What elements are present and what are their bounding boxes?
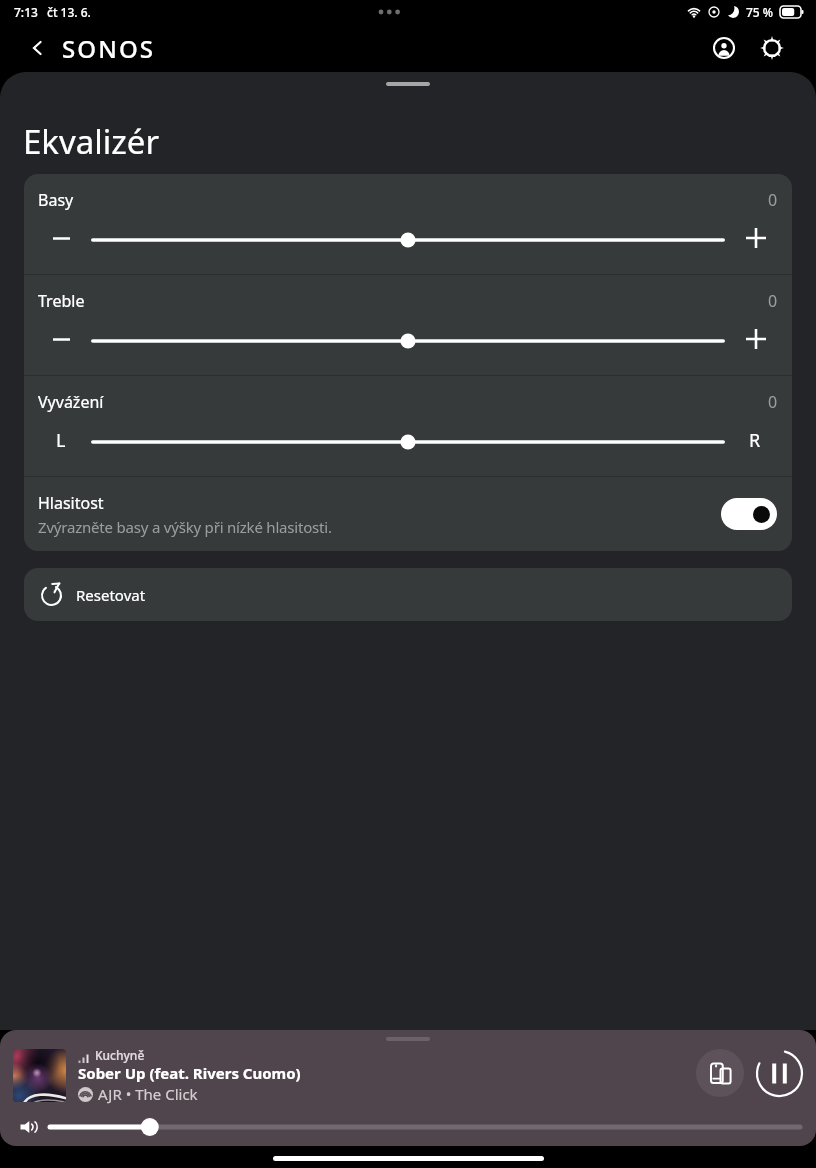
button[interactable]: Increase Treble: [725, 314, 792, 368]
button[interactable]: Pause: [752, 1046, 806, 1100]
staticText: Hlasitost: [38, 492, 104, 514]
button[interactable]: Resetovat: [24, 568, 792, 621]
button[interactable]: Select speakers: [696, 1049, 744, 1097]
staticText: Kuchyně: [95, 1047, 145, 1063]
staticText: L: [56, 428, 66, 453]
button[interactable]: Account: [702, 26, 746, 70]
staticText: AJR • The Click: [98, 1084, 198, 1104]
staticText: 75 %: [746, 4, 774, 20]
button[interactable]: Kuchyně: [0, 1042, 816, 1108]
staticText: Resetovat: [76, 585, 146, 605]
staticText: 0: [768, 391, 778, 413]
button[interactable]: Decrease Treble: [24, 314, 91, 368]
staticText: Ekvalizér: [23, 119, 160, 164]
button[interactable]: Right: [725, 415, 792, 469]
button[interactable]: Decrease Basy: [24, 213, 91, 267]
staticText: Treble: [38, 290, 85, 312]
staticText: R: [749, 428, 761, 453]
button[interactable]: Hlasitost: [24, 477, 792, 551]
button[interactable]: Left: [24, 415, 91, 469]
staticText: 7:13: [14, 4, 38, 20]
staticText: Basy: [38, 189, 74, 211]
staticText: Vyvážení: [38, 391, 104, 413]
staticText: 0: [768, 290, 778, 312]
button[interactable]: Increase Basy: [725, 213, 792, 267]
button[interactable]: Back: [19, 30, 55, 66]
staticText: 0: [768, 189, 778, 211]
staticText: Zvýrazněte basy a výšky při nízké hlasit…: [38, 517, 332, 537]
button[interactable]: Volume: [16, 1116, 38, 1138]
button[interactable]: Settings: [750, 26, 794, 70]
staticText: Sober Up (feat. Rivers Cuomo): [78, 1063, 301, 1083]
staticText: SONOS: [62, 32, 156, 65]
staticText: čt 13. 6.: [47, 4, 91, 20]
